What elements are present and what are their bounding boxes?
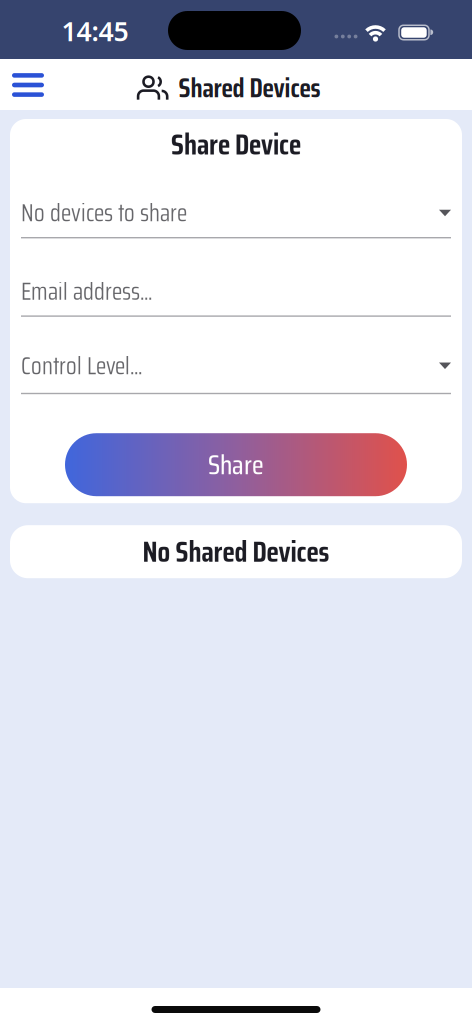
button[interactable]: Menu — [6, 65, 50, 105]
staticText: Share — [208, 443, 264, 486]
button[interactable]: Control Level... — [21, 355, 451, 394]
staticText: No Shared Devices — [142, 529, 329, 574]
button[interactable]: Email address... — [21, 280, 451, 317]
staticText: 14:45 — [61, 13, 128, 49]
staticText: Shared Devices — [178, 67, 320, 109]
button[interactable]: No devices to share — [21, 202, 451, 238]
staticText: Control Level... — [21, 347, 142, 385]
staticText: Email address... — [21, 272, 152, 310]
staticText: No devices to share — [21, 194, 187, 232]
button[interactable]: Share — [65, 433, 407, 496]
staticText: Share Device — [171, 122, 301, 167]
